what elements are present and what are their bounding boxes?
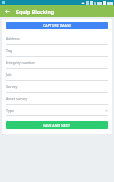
button[interactable]: Tag: [6, 45, 108, 57]
staticText: Tag: [6, 48, 12, 53]
button[interactable]: SAVE AND NEXT: [6, 121, 108, 129]
staticText: Equip Blocking: [16, 8, 55, 15]
staticText: CAPTURE IMAGE: [43, 23, 72, 28]
button[interactable]: Survey: [6, 81, 108, 93]
button[interactable]: Address: [6, 33, 108, 45]
staticText: Address: [6, 36, 20, 41]
staticText: Survey: [6, 84, 18, 89]
button[interactable]: Asset survey: [6, 93, 108, 105]
button[interactable]: Back: [3, 7, 12, 16]
button[interactable]: Job: [6, 69, 108, 81]
staticText: SAVE AND NEXT: [43, 123, 71, 128]
staticText: Job: [6, 72, 12, 77]
staticText: Integrity number: [6, 60, 35, 65]
staticText: Asset survey: [6, 96, 28, 101]
button[interactable]: Integrity number: [6, 57, 108, 69]
button[interactable]: CAPTURE IMAGE: [6, 22, 108, 29]
staticText: Type: [6, 108, 14, 113]
button[interactable]: Type: [6, 105, 108, 116]
